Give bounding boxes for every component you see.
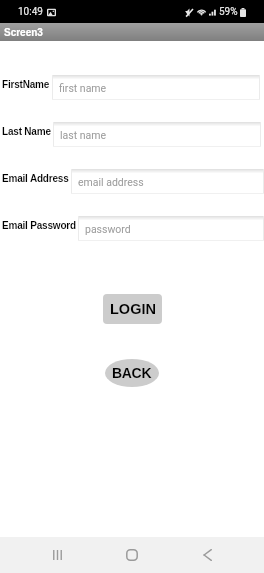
button[interactable]: last name: [53, 122, 261, 147]
staticText: 59%: [219, 6, 238, 18]
button[interactable]: Home: [114, 537, 150, 573]
button[interactable]: email address: [71, 169, 264, 194]
staticText: Screen3: [4, 27, 43, 38]
button[interactable]: BACK: [105, 359, 159, 387]
staticText: FirstName: [2, 79, 50, 90]
staticText: Email Address: [2, 173, 69, 184]
button[interactable]: LOGIN: [103, 294, 162, 324]
staticText: password: [85, 223, 131, 235]
staticText: LOGIN: [110, 301, 156, 317]
button[interactable]: first name: [52, 75, 260, 100]
staticText: email address: [78, 176, 144, 188]
button[interactable]: Recent apps: [39, 537, 75, 573]
staticText: Email Password: [2, 220, 76, 231]
staticText: 10:49: [18, 6, 43, 18]
staticText: BACK: [112, 365, 152, 381]
staticText: last name: [60, 129, 107, 141]
button[interactable]: Back: [189, 537, 225, 573]
staticText: Last Name: [2, 126, 51, 137]
staticText: first name: [59, 82, 107, 94]
button[interactable]: password: [78, 216, 264, 241]
